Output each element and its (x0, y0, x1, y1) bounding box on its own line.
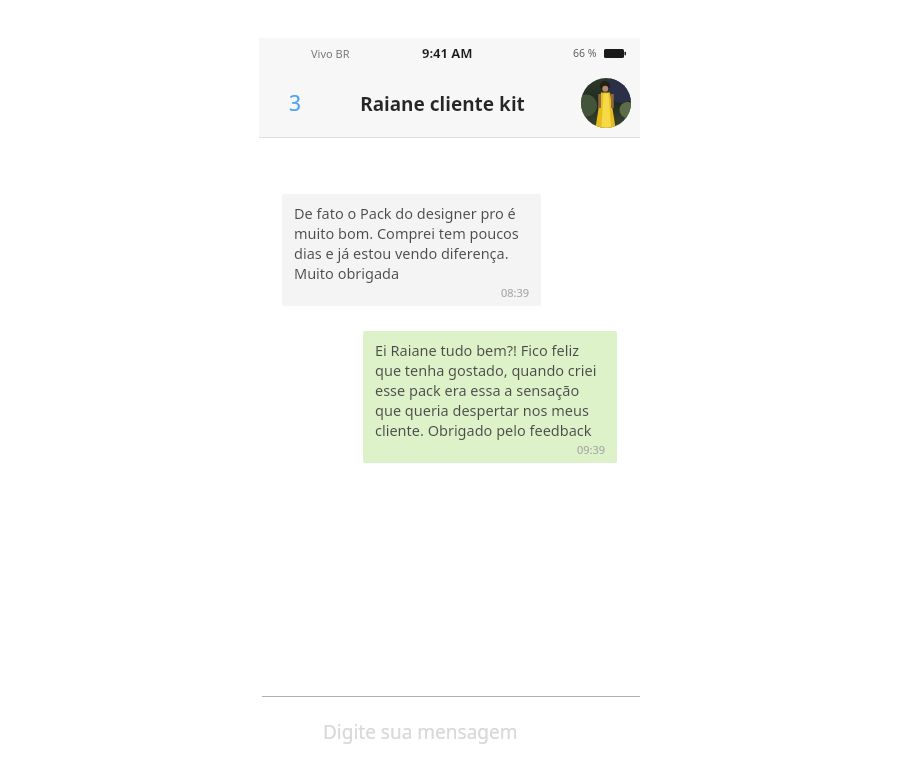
staticText: 3 (289, 89, 302, 118)
staticText: De fato o Pack do designer pro é muito b… (294, 203, 530, 283)
button[interactable]: De fato o Pack do designer pro é muito b… (282, 194, 541, 306)
staticText: Vivo BR (311, 46, 350, 61)
button[interactable]: Contact profile photo (581, 78, 631, 128)
button[interactable]: Digite sua mensagem (259, 697, 640, 776)
staticText: 66 % (573, 46, 597, 60)
button[interactable]: Raiane cliente kit (360, 91, 525, 117)
staticText: Digite sua mensagem (323, 719, 518, 745)
staticText: 08:39 (501, 285, 530, 300)
staticText: Ei Raiane tudo bem?! Fico feliz que tenh… (375, 340, 606, 440)
button[interactable]: Ei Raiane tudo bem?! Fico feliz que tenh… (363, 331, 617, 463)
button[interactable]: Back, 3 unread conversations (278, 84, 312, 122)
staticText: 9:41 AM (422, 44, 473, 62)
staticText: 09:39 (577, 442, 606, 457)
